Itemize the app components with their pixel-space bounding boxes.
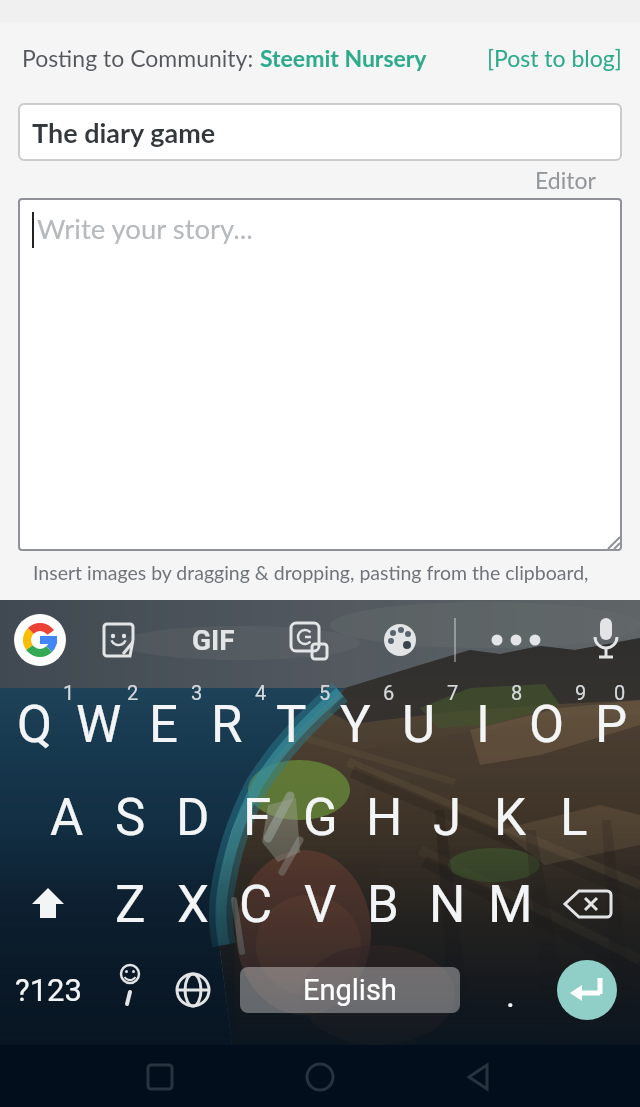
button[interactable] (174, 972, 212, 1010)
staticText: U (402, 695, 436, 755)
staticText: G (303, 788, 338, 848)
staticText: 5 (319, 681, 331, 704)
button[interactable]: V (288, 875, 352, 935)
button[interactable]: P (579, 695, 640, 755)
button[interactable]: E (131, 695, 195, 755)
button[interactable]: Z (98, 875, 162, 935)
staticText: J (433, 788, 462, 848)
staticText: English (303, 973, 397, 1007)
button[interactable]: H (352, 788, 416, 848)
button[interactable]: I (451, 695, 515, 755)
staticText: 7 (447, 681, 459, 704)
button[interactable] (26, 888, 70, 924)
button[interactable]: Posting to Community: (22, 40, 427, 76)
staticText: 2 (127, 681, 139, 704)
staticText: H (366, 788, 403, 848)
staticText: GIF (192, 624, 235, 657)
staticText: B (367, 875, 399, 935)
button[interactable]: T (259, 695, 323, 755)
staticText: ?123 (15, 972, 82, 1008)
staticText: X (177, 875, 209, 935)
button[interactable]: G (288, 788, 352, 848)
button[interactable] (103, 623, 137, 657)
staticText: S (115, 788, 146, 848)
button[interactable]: J (415, 788, 479, 848)
button[interactable]: The diary game (18, 103, 622, 161)
staticText: T (276, 695, 307, 755)
staticText: N (429, 875, 466, 935)
button[interactable]: Q (3, 695, 67, 755)
button[interactable] (290, 622, 328, 660)
staticText: L (560, 788, 588, 848)
button[interactable]: ?123 (10, 960, 86, 1020)
button[interactable] (563, 888, 615, 924)
staticText: Steemit Nursery (260, 44, 427, 72)
button[interactable]: U (387, 695, 451, 755)
staticText: Editor (535, 166, 596, 194)
staticText: Q (17, 695, 53, 755)
button[interactable] (465, 1063, 493, 1091)
button[interactable]: [Post to blog] (470, 40, 622, 76)
button[interactable]: X (161, 875, 225, 935)
staticText: 4 (255, 681, 267, 704)
button[interactable]: N (415, 875, 479, 935)
staticText: 6 (383, 681, 395, 704)
button[interactable] (590, 616, 622, 664)
staticText: 9 (575, 681, 587, 704)
button[interactable]: M (478, 875, 542, 935)
button[interactable]: GIF (180, 622, 246, 658)
button[interactable]: S (98, 788, 162, 848)
staticText: R (211, 695, 243, 755)
button[interactable]: A (35, 788, 99, 848)
staticText: E (149, 695, 178, 755)
button[interactable] (14, 614, 66, 666)
button[interactable]: English (240, 967, 460, 1013)
button[interactable] (557, 960, 617, 1020)
button[interactable]: Y (323, 695, 387, 755)
button[interactable] (305, 1062, 335, 1092)
staticText: [Post to blog] (487, 44, 622, 72)
staticText: 3 (191, 681, 203, 704)
button[interactable] (112, 960, 148, 1020)
staticText: F (243, 788, 272, 848)
button[interactable]: D (161, 788, 225, 848)
button[interactable]: W (67, 695, 131, 755)
button[interactable]: L (542, 788, 606, 848)
staticText: O (529, 695, 565, 755)
staticText: W (76, 695, 122, 755)
staticText: M (488, 875, 533, 935)
staticText: P (595, 695, 628, 755)
staticText: Z (115, 875, 146, 935)
staticText: Posting to Community: (22, 44, 260, 72)
staticText: K (494, 788, 526, 848)
button[interactable]: Write your story... (18, 198, 622, 551)
staticText: 1 (63, 681, 75, 704)
button[interactable] (383, 623, 417, 657)
staticText: 0 (614, 681, 626, 704)
button[interactable]: R (195, 695, 259, 755)
button[interactable]: . (492, 965, 528, 1025)
button[interactable]: F (225, 788, 289, 848)
button[interactable] (146, 1063, 174, 1091)
button[interactable] (490, 630, 542, 650)
staticText: A (50, 788, 84, 848)
staticText: V (304, 875, 337, 935)
button[interactable]: O (515, 695, 579, 755)
staticText: I (476, 695, 490, 755)
staticText: C (239, 875, 273, 935)
staticText: . (506, 975, 515, 1015)
staticText: Insert images by dragging & dropping, pa… (33, 561, 589, 584)
staticText: Y (340, 695, 371, 755)
button[interactable]: C (224, 875, 288, 935)
staticText: The diary game (32, 116, 216, 148)
button[interactable]: K (478, 788, 542, 848)
button[interactable]: B (351, 875, 415, 935)
staticText: 8 (511, 681, 523, 704)
staticText: D (176, 788, 210, 848)
staticText: Write your story... (37, 212, 253, 245)
